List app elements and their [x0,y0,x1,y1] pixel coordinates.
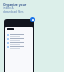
button[interactable] [7,45,31,49]
button[interactable]: Compose [30,17,35,22]
staticText: download files [3,10,24,14]
button[interactable] [7,37,31,41]
staticText: Organize your [3,2,27,6]
staticText: inbox & [3,6,14,10]
button[interactable] [7,41,31,45]
button[interactable] [7,33,31,37]
